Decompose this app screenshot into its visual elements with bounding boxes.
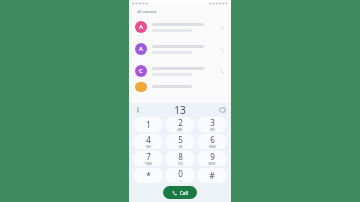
button[interactable]: * xyxy=(133,168,163,183)
staticText: C xyxy=(139,67,143,75)
button[interactable]: 5 xyxy=(165,134,195,149)
button[interactable]: 8 xyxy=(165,151,195,166)
staticText: 2 xyxy=(178,117,183,128)
staticText: ABC xyxy=(177,128,183,132)
button[interactable]: 6 xyxy=(197,134,227,149)
button[interactable]: 2 xyxy=(165,117,195,132)
staticText: A xyxy=(139,45,143,53)
button[interactable]: 9 xyxy=(197,151,227,166)
staticText: MNO xyxy=(209,145,216,149)
button[interactable] xyxy=(129,82,231,92)
staticText: 1 xyxy=(146,119,151,130)
staticText: 9 xyxy=(210,151,215,162)
staticText: + xyxy=(180,179,182,183)
button[interactable]: 3 xyxy=(197,117,227,132)
staticText: DEF xyxy=(210,128,215,132)
button[interactable]: A xyxy=(129,16,231,38)
staticText: 3 xyxy=(210,117,215,128)
button[interactable]: A xyxy=(129,38,231,60)
button[interactable]: 7 xyxy=(133,151,163,166)
button[interactable]: Call contact xyxy=(219,68,225,74)
button[interactable]: More options xyxy=(134,106,142,114)
button[interactable]: Call xyxy=(163,186,197,199)
button[interactable]: Call contact xyxy=(219,24,225,30)
staticText: # xyxy=(209,170,215,181)
staticText: 8 xyxy=(178,151,183,162)
staticText: WXYZ xyxy=(208,162,216,166)
button[interactable]: 1 xyxy=(133,117,163,132)
staticText: PQRS xyxy=(145,162,152,166)
staticText: JKL xyxy=(179,145,183,149)
staticText: 44 contacts xyxy=(137,9,157,14)
button[interactable]: 4 xyxy=(133,134,163,149)
staticText: 7 xyxy=(146,151,151,162)
button[interactable]: C xyxy=(129,60,231,82)
staticText: TUV xyxy=(178,162,183,166)
staticText: A xyxy=(139,23,143,31)
staticText: * xyxy=(146,170,151,181)
staticText: 13 xyxy=(174,103,186,116)
button[interactable]: 0 xyxy=(165,168,195,183)
staticText: GHI xyxy=(146,145,151,149)
staticText: 0 xyxy=(178,168,183,179)
staticText: Call xyxy=(180,190,188,196)
staticText: 4 xyxy=(146,134,151,145)
button[interactable]: Call contact xyxy=(219,46,225,52)
button[interactable]: # xyxy=(197,168,227,183)
button[interactable]: Backspace xyxy=(218,106,226,114)
staticText: 5 xyxy=(178,134,183,145)
staticText: 6 xyxy=(210,134,215,145)
